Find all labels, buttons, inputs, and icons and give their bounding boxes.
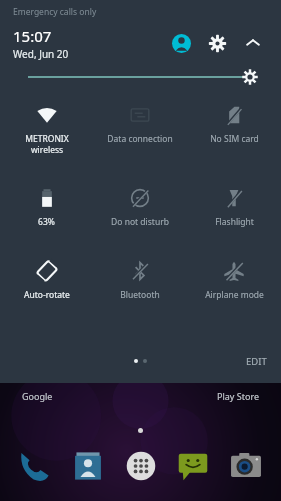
button[interactable]: Settings <box>202 28 232 58</box>
button[interactable]: Collapse <box>238 28 268 58</box>
staticText: Airplane mode <box>205 289 264 301</box>
button[interactable]: No SIM card <box>187 102 281 147</box>
button[interactable]: Data connection <box>93 102 187 147</box>
button[interactable]: Messaging <box>172 445 214 487</box>
button[interactable]: User profile <box>166 28 196 58</box>
staticText: Auto-rotate <box>24 289 70 301</box>
button[interactable] <box>0 62 281 92</box>
staticText: 63% <box>38 216 55 228</box>
staticText: 15:07 <box>13 26 52 46</box>
staticText: Data connection <box>107 133 173 145</box>
staticText: METRONIX wireless <box>25 133 69 155</box>
button[interactable]: Auto-rotate <box>0 258 93 303</box>
button[interactable]: Flashlight <box>187 185 281 230</box>
button[interactable]: Google <box>22 390 53 402</box>
staticText: Do not disturb <box>111 216 169 228</box>
button[interactable]: Bluetooth <box>93 258 187 303</box>
button[interactable]: METRONIX wireless <box>0 102 93 157</box>
button[interactable]: Play Store <box>217 390 259 402</box>
staticText: No SIM card <box>210 133 259 145</box>
button[interactable]: EDIT <box>232 353 281 370</box>
button[interactable]: Contacts <box>67 445 109 487</box>
staticText: Wed, Jun 20 <box>13 47 69 61</box>
staticText: EDIT <box>246 355 267 368</box>
staticText: Emergency calls only <box>13 6 97 18</box>
button[interactable]: Apps <box>120 445 162 487</box>
staticText: Flashlight <box>215 216 254 228</box>
button[interactable]: Do not disturb <box>93 185 187 230</box>
staticText: Bluetooth <box>120 289 160 301</box>
button[interactable]: 63% <box>0 185 93 230</box>
button[interactable]: Airplane mode <box>187 258 281 303</box>
button[interactable]: Camera <box>225 445 267 487</box>
button[interactable]: Phone <box>14 445 56 487</box>
